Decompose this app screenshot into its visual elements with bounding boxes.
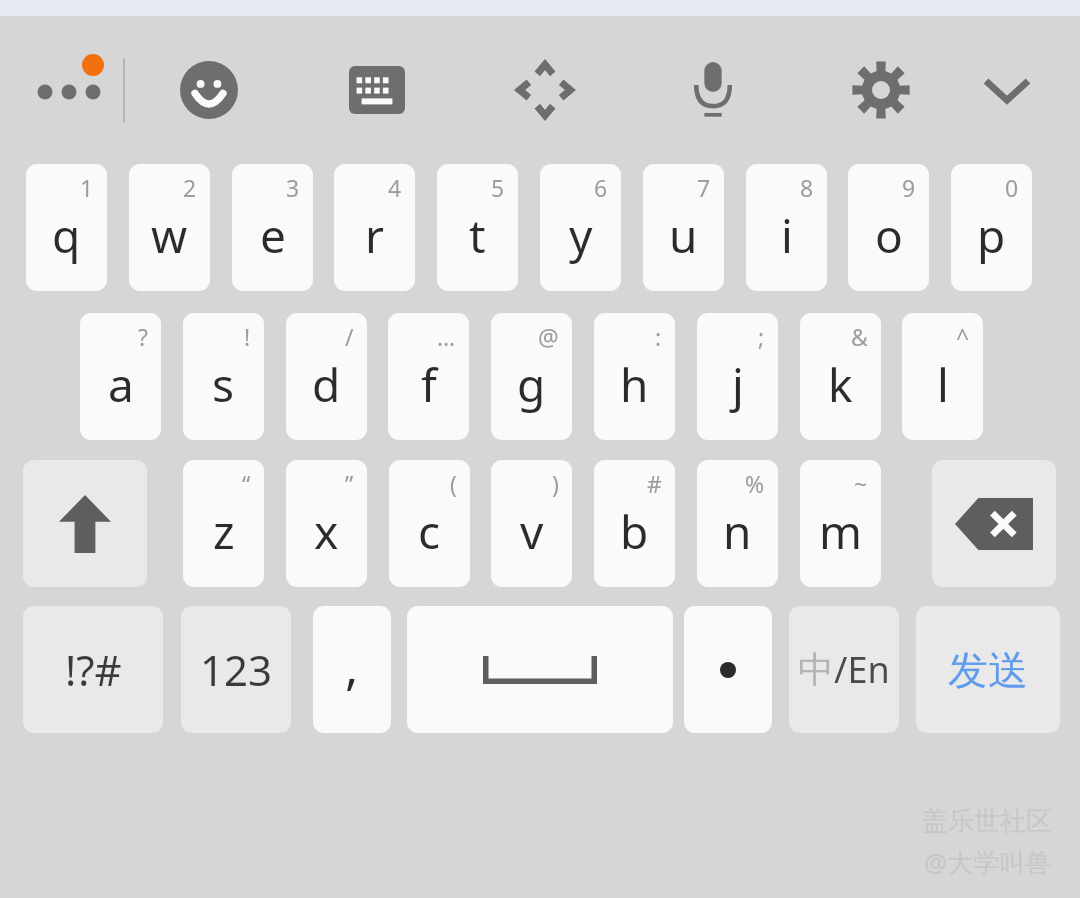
button[interactable]: e xyxy=(232,164,313,291)
button[interactable]: x xyxy=(286,460,367,587)
staticText: n xyxy=(723,500,752,563)
staticText: y xyxy=(569,204,593,267)
staticText: b xyxy=(620,500,649,563)
button[interactable]: k xyxy=(800,313,881,440)
staticText: 盖乐世社区 xyxy=(922,805,1052,838)
staticText: !?# xyxy=(65,641,122,698)
staticText: … xyxy=(437,321,456,352)
button[interactable]: Numbers xyxy=(181,606,291,733)
staticText: ( xyxy=(450,468,457,499)
staticText: 中 xyxy=(798,647,834,692)
staticText: ~ xyxy=(854,468,868,499)
button[interactable]: w xyxy=(129,164,210,291)
button[interactable]: Comma xyxy=(313,606,391,733)
button[interactable]: b xyxy=(594,460,675,587)
button[interactable]: l xyxy=(902,313,983,440)
staticText: t xyxy=(469,204,486,267)
staticText: v xyxy=(520,500,544,563)
button[interactable]: h xyxy=(594,313,675,440)
staticText: ) xyxy=(552,468,559,499)
staticText: k xyxy=(828,353,853,416)
staticText: # xyxy=(647,468,662,499)
button[interactable]: Shift xyxy=(23,460,147,587)
staticText: m xyxy=(819,500,863,563)
button[interactable]: p xyxy=(951,164,1032,291)
button[interactable]: Cursor move xyxy=(503,48,587,132)
button[interactable]: Period xyxy=(684,606,772,733)
staticText: ? xyxy=(138,321,148,352)
staticText: 0 xyxy=(1005,172,1019,203)
staticText: 123 xyxy=(200,641,273,698)
button[interactable]: i xyxy=(746,164,827,291)
staticText: 发送 xyxy=(948,645,1028,695)
button[interactable]: z xyxy=(183,460,264,587)
staticText: l xyxy=(937,353,949,416)
button[interactable]: g xyxy=(491,313,572,440)
button[interactable]: q xyxy=(26,164,107,291)
staticText: r xyxy=(365,204,384,267)
staticText: ; xyxy=(758,321,765,352)
button[interactable]: s xyxy=(183,313,264,440)
staticText: ” xyxy=(345,468,354,499)
staticText: 1 xyxy=(80,172,94,203)
button[interactable]: Hide keyboard xyxy=(965,48,1049,132)
button[interactable]: Symbols xyxy=(23,606,163,733)
button[interactable]: t xyxy=(437,164,518,291)
button[interactable]: Space xyxy=(407,606,673,733)
staticText: x xyxy=(314,500,339,563)
staticText: o xyxy=(875,204,903,267)
staticText: & xyxy=(851,321,868,352)
button[interactable]: Backspace xyxy=(932,460,1056,587)
button[interactable]: c xyxy=(389,460,470,587)
staticText: 8 xyxy=(800,172,814,203)
staticText: j xyxy=(732,353,744,416)
staticText: c xyxy=(418,500,441,563)
staticText: ^ xyxy=(956,321,970,352)
button[interactable]: Send xyxy=(916,606,1060,733)
staticText: 3 xyxy=(286,172,300,203)
staticText: % xyxy=(745,468,765,499)
staticText: 4 xyxy=(388,172,402,203)
button[interactable]: Settings xyxy=(839,48,923,132)
button[interactable]: d xyxy=(286,313,367,440)
button[interactable]: r xyxy=(334,164,415,291)
button[interactable]: o xyxy=(848,164,929,291)
button[interactable]: Voice input xyxy=(671,48,755,132)
button[interactable]: m xyxy=(800,460,881,587)
button[interactable]: Keyboard layout xyxy=(335,48,419,132)
button[interactable]: n xyxy=(697,460,778,587)
staticText: 2 xyxy=(183,172,197,203)
staticText: p xyxy=(977,204,1006,267)
button[interactable]: f xyxy=(388,313,469,440)
button[interactable]: v xyxy=(491,460,572,587)
staticText: 6 xyxy=(594,172,608,203)
staticText: a xyxy=(108,353,134,416)
staticText: @ xyxy=(538,321,559,352)
staticText: / xyxy=(345,321,354,352)
staticText: s xyxy=(212,353,235,416)
staticText: “ xyxy=(242,468,251,499)
button[interactable]: Switch language xyxy=(789,606,899,733)
button[interactable]: y xyxy=(540,164,621,291)
staticText: f xyxy=(421,353,437,416)
staticText: z xyxy=(213,500,235,563)
staticText: i xyxy=(781,204,793,267)
staticText: 9 xyxy=(902,172,916,203)
staticText: /En xyxy=(834,645,890,694)
staticText: d xyxy=(312,353,341,416)
staticText: g xyxy=(517,353,546,416)
staticText: w xyxy=(151,204,188,267)
staticText: 7 xyxy=(697,172,711,203)
staticText: @大学叫兽 xyxy=(924,844,1052,880)
staticText: q xyxy=(52,204,81,267)
staticText: , xyxy=(345,632,359,700)
button[interactable]: u xyxy=(643,164,724,291)
button[interactable]: Emoji xyxy=(167,48,251,132)
staticText: ! xyxy=(244,321,251,352)
button[interactable]: More options xyxy=(18,62,110,122)
button[interactable]: j xyxy=(697,313,778,440)
staticText: h xyxy=(620,353,649,416)
staticText: u xyxy=(669,204,698,267)
staticText: : xyxy=(655,321,662,352)
button[interactable]: a xyxy=(80,313,161,440)
